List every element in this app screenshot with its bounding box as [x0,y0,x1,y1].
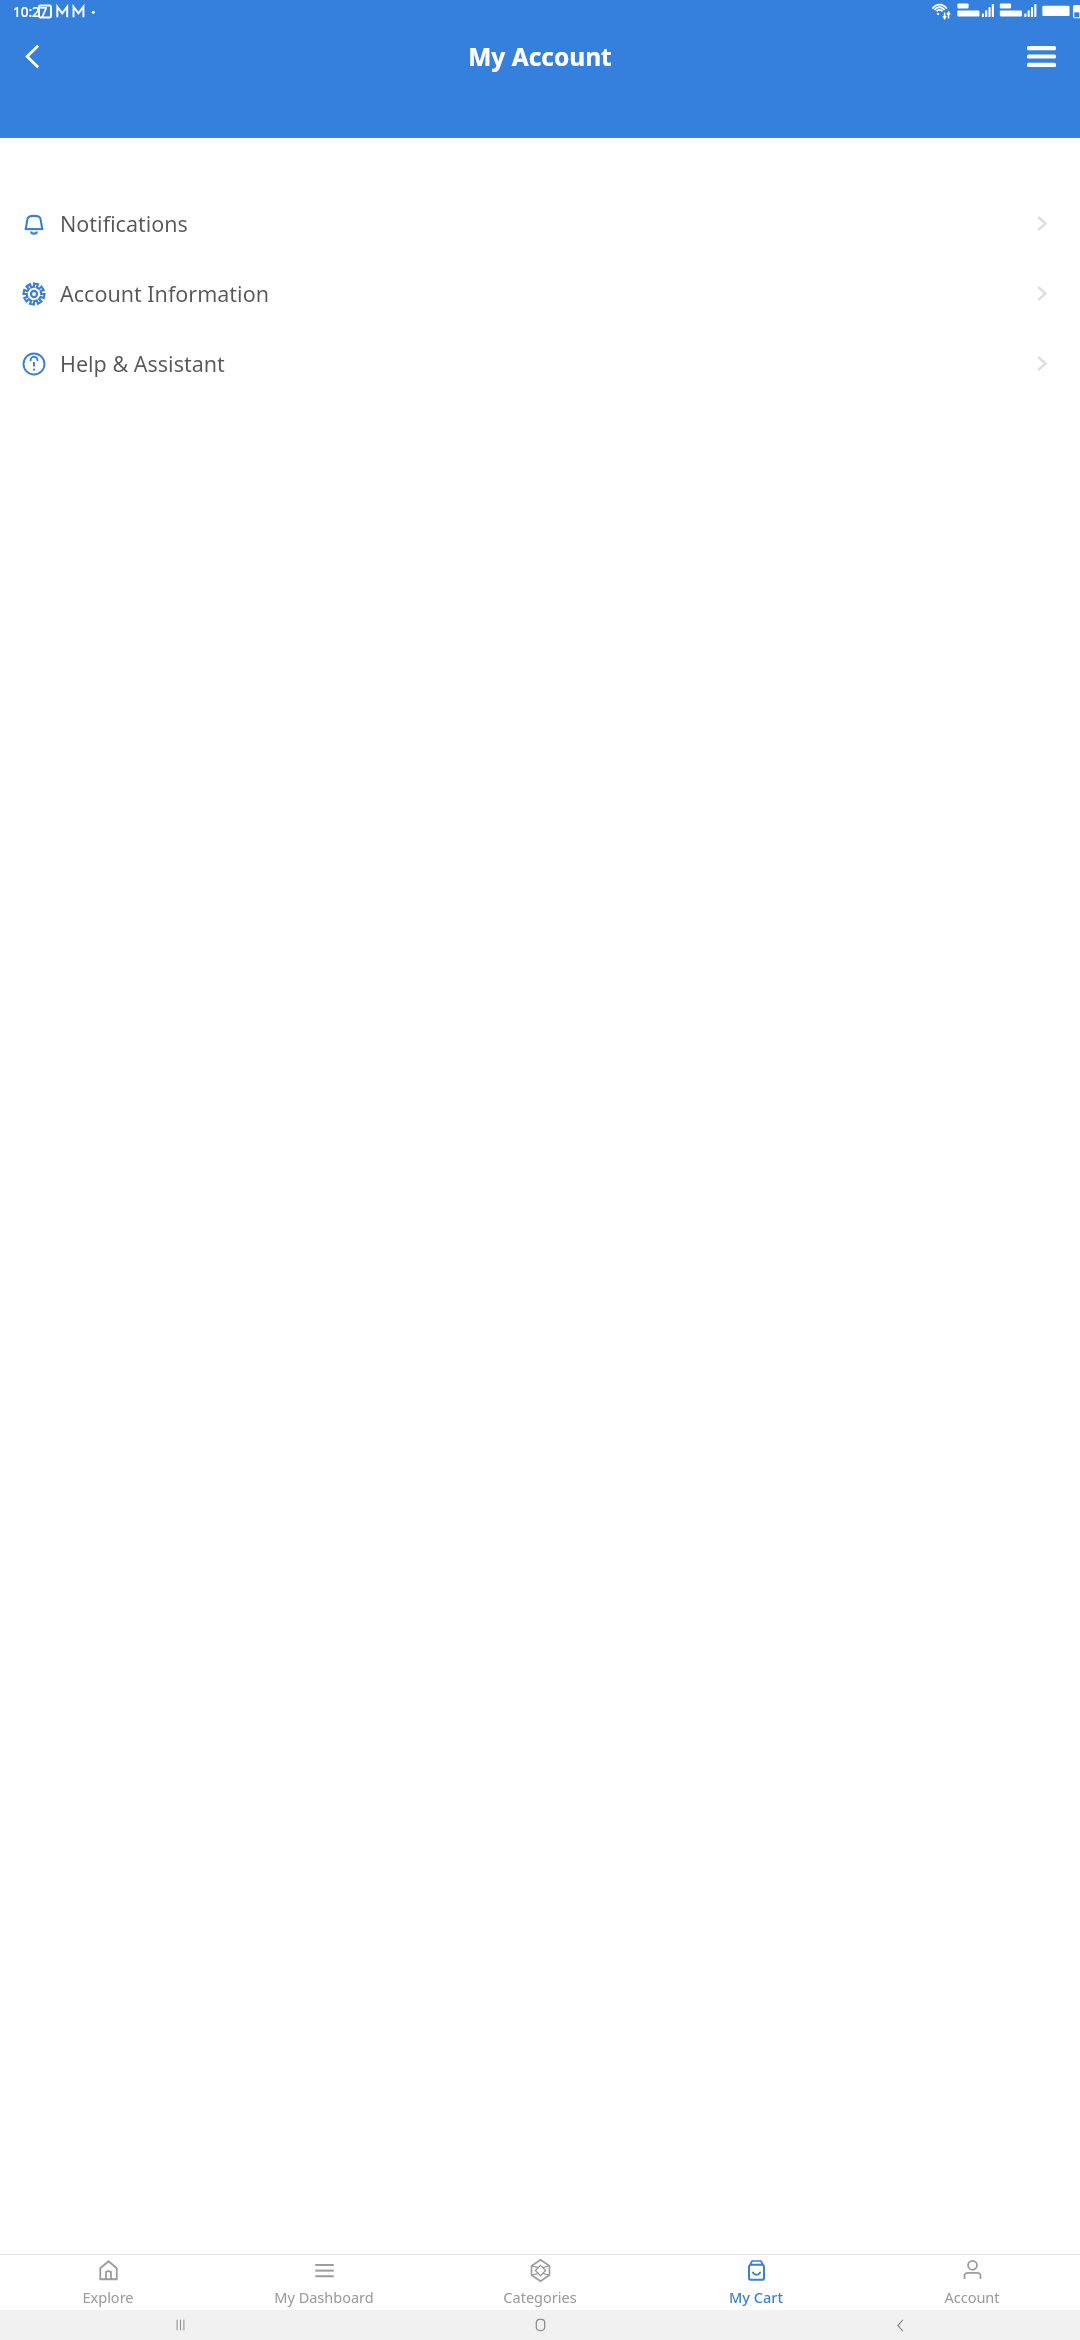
button[interactable]: Home [360,2310,720,2340]
staticText: My Dashboard [274,2287,374,2307]
staticText: My Cart [729,2287,783,2307]
button[interactable]: Account [864,2255,1080,2310]
button[interactable]: My Cart [648,2255,864,2310]
staticText: Explore [82,2287,134,2307]
button[interactable]: Recent apps [0,2310,360,2340]
staticText: 10:27 [13,3,48,21]
staticText: Categories [503,2287,577,2307]
staticText: Account [944,2287,1000,2307]
button[interactable]: Notifications [0,200,1080,247]
staticText: My Account [468,40,612,73]
button[interactable]: Back [7,30,59,82]
button[interactable]: Help & Assistant [0,340,1080,387]
button[interactable]: My Dashboard [216,2255,432,2310]
staticText: Account Information [60,279,269,308]
button[interactable]: Menu [1013,28,1069,84]
button[interactable]: Categories [432,2255,648,2310]
button[interactable]: Explore [0,2255,216,2310]
staticText: Help & Assistant [60,349,225,378]
button[interactable]: Account Information [0,270,1080,317]
staticText: Notifications [60,209,188,238]
button[interactable]: Back [720,2310,1080,2340]
